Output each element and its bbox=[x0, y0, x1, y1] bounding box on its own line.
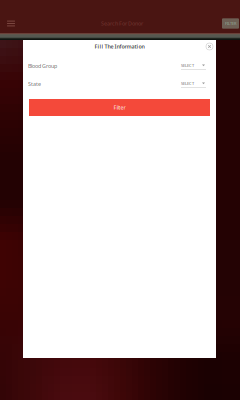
button[interactable]: SELECT bbox=[181, 80, 216, 88]
staticText: Blood Group bbox=[28, 62, 57, 70]
staticText: Filter bbox=[113, 104, 125, 111]
staticText: Fill The Information bbox=[94, 43, 144, 50]
button[interactable]: Filter bbox=[29, 99, 210, 116]
staticText: Search For Donor bbox=[101, 20, 143, 27]
button[interactable]: SELECT bbox=[181, 62, 216, 70]
staticText: SELECT bbox=[181, 81, 194, 86]
staticText: State bbox=[28, 80, 41, 88]
button[interactable]: FILTER bbox=[222, 18, 240, 29]
button[interactable]: Menu bbox=[0, 11, 22, 36]
staticText: FILTER bbox=[225, 21, 236, 26]
button[interactable]: Close bbox=[203, 43, 216, 50]
staticText: SELECT bbox=[181, 63, 194, 68]
